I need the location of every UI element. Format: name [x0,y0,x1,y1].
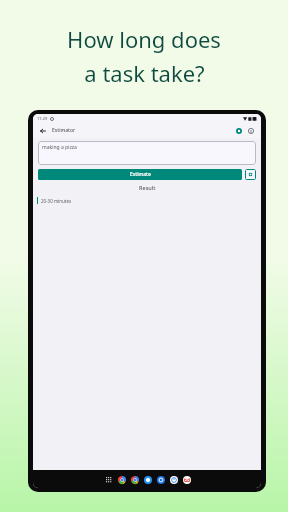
button[interactable]: Add [245,169,256,180]
button[interactable]: Estimate [38,169,242,180]
staticText: Result [139,184,156,191]
staticText: making a pizza [42,144,77,151]
staticText: a task take? [84,58,205,88]
button[interactable]: making a pizza [38,141,256,165]
staticText: Estimate [130,171,151,178]
staticText: Estimator [52,127,76,134]
button[interactable]: Messages [142,474,153,485]
button[interactable]: Chrome [129,474,140,485]
staticText: 20-30 minutes [41,198,72,204]
button[interactable]: Clock [168,474,179,485]
staticText: 11:29 [37,116,48,121]
staticText: How long does [67,24,221,54]
button[interactable]: Back [38,126,48,136]
button[interactable]: 20-30 minutes [37,196,257,205]
button[interactable]: All apps [103,474,114,485]
button[interactable]: Settings [155,474,166,485]
button[interactable]: Gmail [181,474,192,485]
button[interactable]: Info [246,126,256,136]
button[interactable]: Chrome [116,474,127,485]
button[interactable]: Theme [234,126,244,136]
